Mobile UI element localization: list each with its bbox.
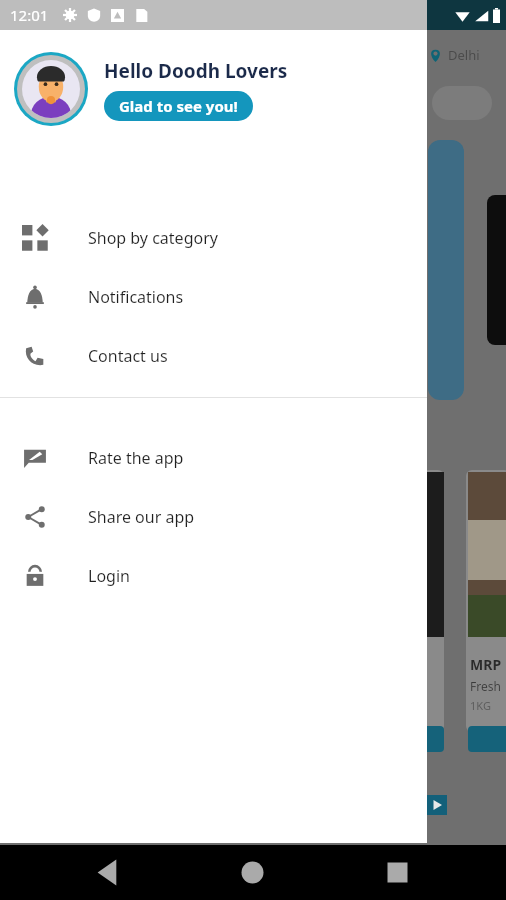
button[interactable]: Shop by category	[0, 208, 427, 267]
button[interactable]: Contact us	[0, 326, 427, 385]
staticText: 1KG	[470, 698, 491, 713]
staticText: Delhi	[448, 46, 480, 64]
button[interactable]: Recents	[370, 845, 425, 900]
staticText: Fresh	[470, 678, 501, 694]
staticText: Shop by category	[88, 227, 218, 249]
button[interactable]: Share our app	[0, 487, 427, 546]
staticText: Hello Doodh Lovers	[104, 58, 288, 84]
button[interactable]: Notifications	[0, 267, 427, 326]
button[interactable]: Rate the app	[0, 428, 427, 487]
staticText: Contact us	[88, 345, 168, 367]
button[interactable]: Login	[0, 546, 427, 605]
staticText: Login	[88, 565, 130, 587]
staticText: Rate the app	[88, 447, 184, 469]
staticText: MRP	[470, 655, 502, 674]
staticText: 12:01	[10, 5, 49, 25]
button[interactable]: Back	[80, 845, 135, 900]
button[interactable]: Glad to see you!	[104, 91, 253, 121]
staticText: Notifications	[88, 286, 184, 308]
staticText: Share our app	[88, 506, 195, 528]
button[interactable]: Home	[225, 845, 280, 900]
staticText: Glad to see you!	[119, 96, 238, 116]
